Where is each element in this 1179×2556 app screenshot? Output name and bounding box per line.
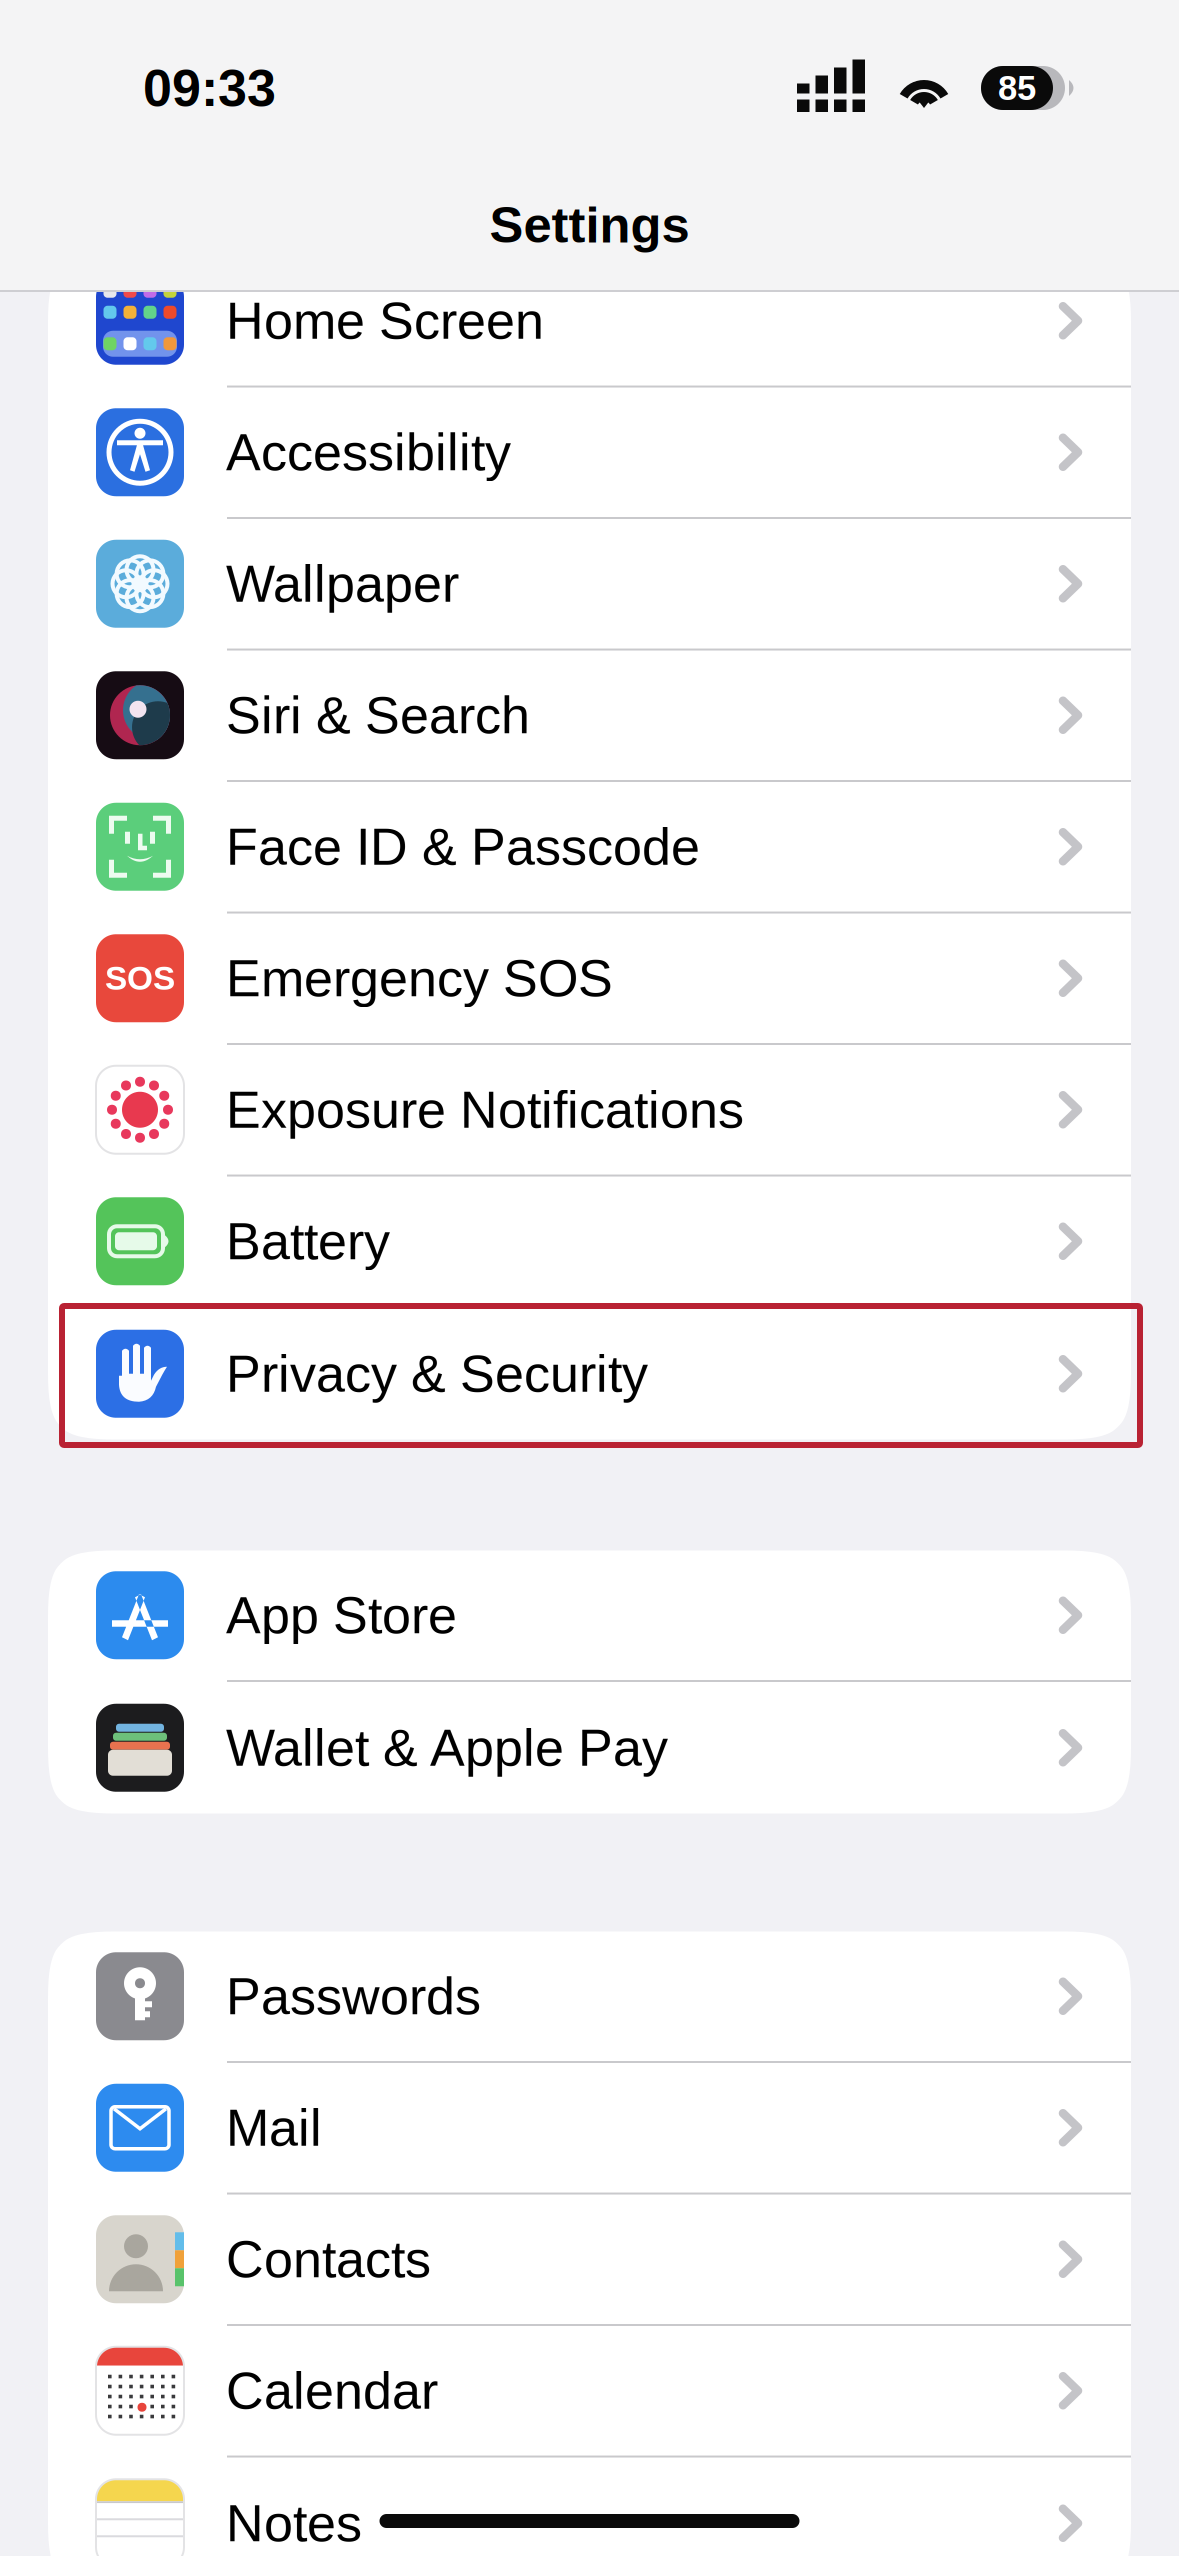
button[interactable]: Wallet & Apple Pay: [48, 1682, 1131, 1813]
button[interactable]: Mail: [48, 2063, 1131, 2194]
staticText: Emergency SOS: [226, 949, 613, 1007]
staticText: Mail: [226, 2099, 322, 2157]
button[interactable]: Battery: [48, 1176, 1131, 1308]
staticText: Exposure Notifications: [226, 1081, 744, 1139]
staticText: SOS: [105, 960, 175, 997]
staticText: Settings: [489, 197, 689, 253]
staticText: App Store: [226, 1586, 457, 1644]
button[interactable]: Calendar: [48, 2326, 1131, 2457]
staticText: Notes: [226, 2494, 362, 2552]
button[interactable]: Passwords: [48, 1931, 1131, 2063]
staticText: Wallet & Apple Pay: [226, 1719, 668, 1777]
staticText: Accessibility: [226, 423, 511, 481]
button[interactable]: App Store: [48, 1550, 1131, 1682]
staticText: Face ID & Passcode: [226, 818, 700, 876]
staticText: Passwords: [226, 1967, 481, 2025]
staticText: Contacts: [226, 2230, 431, 2288]
staticText: Home Screen: [226, 292, 544, 350]
staticText: Wallpaper: [226, 555, 459, 613]
staticText: Siri & Search: [226, 686, 530, 744]
button[interactable]: Wallpaper: [48, 519, 1131, 650]
staticText: Battery: [226, 1212, 390, 1270]
button[interactable]: Home Screen: [48, 256, 1131, 387]
button[interactable]: SOS: [48, 913, 1131, 1045]
button[interactable]: Privacy & Security: [48, 1308, 1131, 1439]
staticText: 09:33: [143, 59, 276, 117]
button[interactable]: Exposure Notifications: [48, 1045, 1131, 1176]
button[interactable]: Notes: [48, 2457, 1131, 2556]
button[interactable]: Face ID & Passcode: [48, 782, 1131, 913]
button[interactable]: Accessibility: [48, 387, 1131, 519]
staticText: 85: [998, 69, 1036, 107]
button[interactable]: Siri & Search: [48, 650, 1131, 782]
staticText: Privacy & Security: [226, 1345, 648, 1403]
staticText: Calendar: [226, 2362, 438, 2420]
button[interactable]: Contacts: [48, 2194, 1131, 2326]
